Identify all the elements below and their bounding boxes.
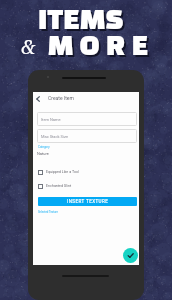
staticText: INSERT TEXTURE	[67, 199, 109, 204]
button[interactable]: Back	[33, 94, 43, 104]
staticText: ITEMS	[40, 10, 126, 36]
button[interactable]: Equipped Like a Tool	[38, 169, 79, 175]
staticText: MORE	[48, 34, 155, 60]
staticText: Create Item	[48, 95, 74, 101]
button[interactable]: Save	[123, 248, 138, 263]
button[interactable]: INSERT TEXTURE	[38, 197, 137, 206]
staticText: Selected Texture	[38, 210, 58, 213]
staticText: Enchanted Glint	[46, 184, 72, 188]
staticText: ITEMS	[38, 8, 124, 34]
staticText: Nature	[37, 151, 49, 156]
staticText: Equipped Like a Tool	[46, 170, 79, 174]
button[interactable]: Item Name	[37, 112, 137, 126]
staticText: &	[21, 34, 36, 60]
button[interactable]: Enchanted Glint	[38, 183, 72, 189]
staticText: Max Stack Size	[41, 134, 69, 139]
button[interactable]: Max Stack Size	[37, 129, 137, 143]
staticText: Item Name	[41, 117, 61, 122]
staticText: Category	[38, 145, 50, 148]
staticText: MORE	[50, 36, 157, 62]
